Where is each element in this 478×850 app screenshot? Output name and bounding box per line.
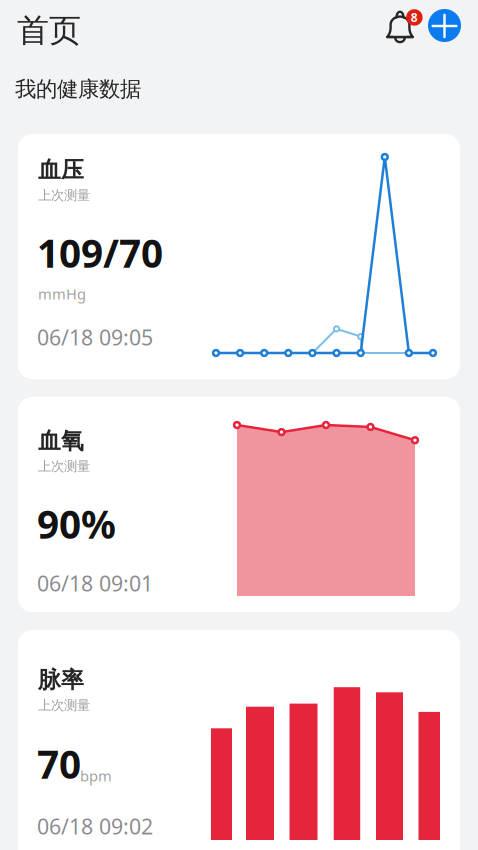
staticText: 06/18 09:05: [37, 323, 153, 351]
staticText: 上次测量: [38, 187, 90, 203]
staticText: 脉率: [38, 666, 84, 694]
staticText: 首页: [17, 11, 81, 50]
staticText: 血压: [38, 156, 84, 184]
staticText: 8: [411, 9, 418, 25]
staticText: 06/18 09:02: [37, 812, 153, 840]
staticText: 90%: [37, 498, 116, 549]
staticText: 上次测量: [38, 697, 90, 713]
staticText: 70: [37, 738, 81, 789]
staticText: mmHg: [38, 284, 86, 303]
staticText: 109/70: [37, 227, 163, 278]
button[interactable]: Add: [428, 9, 461, 42]
staticText: bpm: [80, 766, 112, 785]
button[interactable]: Notifications: [381, 6, 419, 47]
staticText: 血氧: [38, 427, 84, 455]
staticText: 06/18 09:01: [37, 569, 153, 597]
staticText: 我的健康数据: [15, 76, 141, 102]
staticText: 上次测量: [38, 458, 90, 474]
